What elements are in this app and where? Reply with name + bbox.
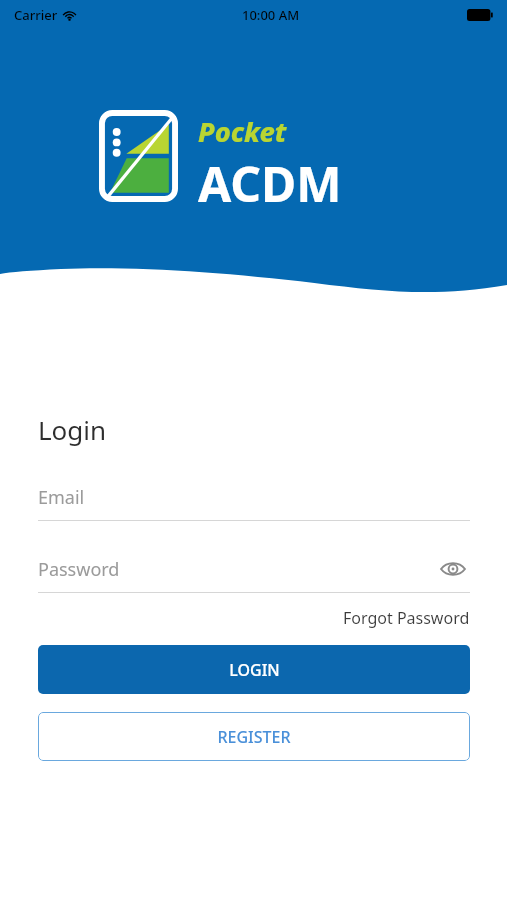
button[interactable]: REGISTER — [38, 712, 470, 761]
staticText: Carrier — [14, 6, 58, 24]
button[interactable]: Email — [38, 474, 470, 520]
button[interactable]: LOGIN — [38, 645, 470, 694]
staticText: Pocket — [198, 113, 287, 150]
staticText: Login — [38, 412, 107, 447]
button[interactable]: Forgot Password — [343, 604, 470, 632]
staticText: Email — [38, 485, 85, 510]
staticText: LOGIN — [229, 659, 280, 681]
staticText: REGISTER — [217, 726, 291, 748]
staticText: 10:00 AM — [242, 6, 300, 24]
staticText: ACDM — [198, 151, 342, 216]
button[interactable]: Show password — [436, 552, 470, 586]
staticText: Password — [38, 557, 436, 582]
staticText: Forgot Password — [343, 607, 470, 629]
button[interactable]: Password — [38, 546, 470, 592]
